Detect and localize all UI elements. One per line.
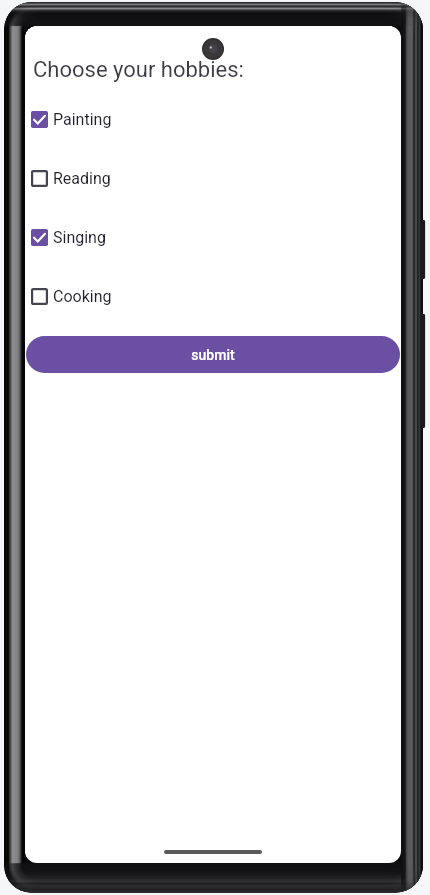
button[interactable]: Reading xyxy=(25,149,401,208)
staticText: Painting xyxy=(53,110,112,129)
staticText: Singing xyxy=(53,228,106,247)
button[interactable]: Painting xyxy=(25,90,401,149)
staticText: Cooking xyxy=(53,287,112,306)
other: Camera xyxy=(202,38,224,60)
staticText: submit xyxy=(191,347,235,363)
button[interactable]: submit xyxy=(26,336,400,373)
staticText: Reading xyxy=(53,169,111,188)
button[interactable]: Cooking xyxy=(25,267,401,326)
staticText: Choose your hobbies: xyxy=(33,57,244,83)
button[interactable]: Singing xyxy=(25,208,401,267)
